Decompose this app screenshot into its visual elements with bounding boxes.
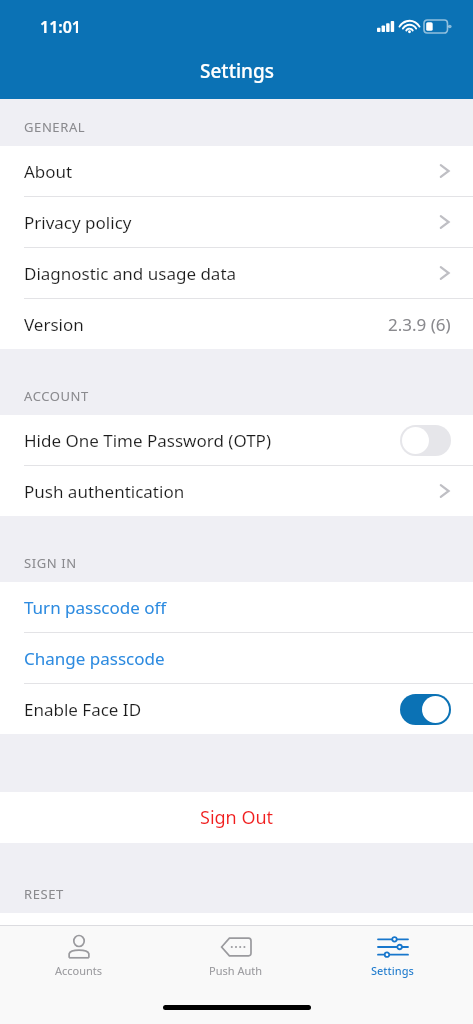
staticText: Hide One Time Password (OTP): [24, 429, 271, 452]
staticText: Sign Out: [200, 805, 274, 830]
staticText: Enable Face ID: [24, 698, 142, 721]
button[interactable]: Accounts: [0, 926, 157, 990]
staticText: Push authentication: [24, 480, 185, 503]
staticText: Change passcode: [24, 647, 165, 670]
staticText: RESET: [24, 885, 64, 903]
staticText: GENERAL: [24, 118, 86, 136]
staticText: Settings: [200, 58, 274, 84]
staticText: Settings: [371, 963, 414, 978]
staticText: 2.3.9 (6): [388, 313, 451, 336]
button[interactable]: Toggle off: [400, 425, 451, 456]
button[interactable]: Hide One Time Password (OTP): [0, 415, 473, 465]
button[interactable]: Version: [0, 299, 473, 349]
button[interactable]: Change passcode: [0, 633, 473, 683]
button[interactable]: Sign Out: [0, 792, 473, 843]
button[interactable]: Settings: [314, 926, 471, 990]
staticText: About: [24, 160, 73, 183]
staticText: Accounts: [55, 963, 103, 978]
staticText: 11:01: [40, 16, 82, 38]
staticText: Turn passcode off: [24, 596, 167, 619]
staticText: Version: [24, 313, 84, 336]
button[interactable]: Privacy policy: [0, 197, 473, 247]
button[interactable]: About: [0, 146, 473, 196]
button[interactable]: Turn passcode off: [0, 582, 473, 632]
button[interactable]: Diagnostic and usage data: [0, 248, 473, 298]
button[interactable]: Push Auth: [157, 926, 314, 990]
staticText: Diagnostic and usage data: [24, 262, 237, 285]
button[interactable]: Push authentication: [0, 466, 473, 516]
staticText: Push Auth: [209, 963, 262, 978]
staticText: ACCOUNT: [24, 387, 89, 405]
staticText: SIGN IN: [24, 554, 77, 572]
button[interactable]: Toggle on: [400, 694, 451, 725]
staticText: Privacy policy: [24, 211, 132, 234]
button[interactable]: Enable Face ID: [0, 684, 473, 734]
